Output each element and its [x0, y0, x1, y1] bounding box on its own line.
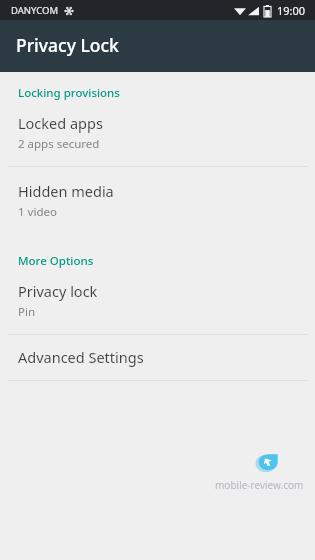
- staticText: Privacy lock: [18, 281, 98, 301]
- staticText: 1 video: [18, 204, 57, 220]
- staticText: More Options: [18, 253, 94, 269]
- staticText: Locked apps: [18, 113, 103, 133]
- staticText: Locking provisions: [18, 85, 120, 101]
- staticText: 19:00: [277, 3, 306, 18]
- staticText: Privacy Lock: [16, 33, 119, 57]
- staticText: Advanced Settings: [18, 347, 144, 367]
- button[interactable]: Locked apps: [0, 113, 315, 152]
- staticText: DANYCOM: [11, 4, 59, 17]
- button[interactable]: Hidden media: [0, 181, 315, 220]
- staticText: Hidden media: [18, 181, 114, 201]
- button[interactable]: Privacy lock: [0, 281, 315, 320]
- staticText: 2 apps secured: [18, 136, 100, 152]
- button[interactable]: Advanced Settings: [0, 347, 315, 367]
- staticText: Pin: [18, 304, 36, 320]
- staticText: mobile-review.com: [215, 478, 304, 492]
